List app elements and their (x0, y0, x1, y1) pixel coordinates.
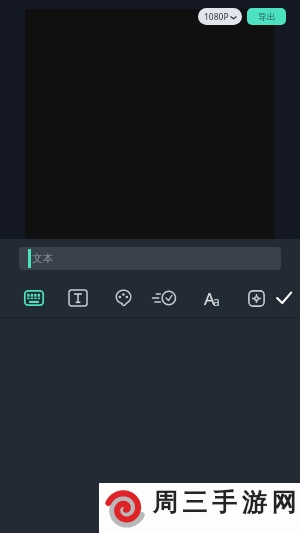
button[interactable]: Batch edit (240, 285, 272, 311)
button[interactable]: 导出 (247, 8, 286, 25)
button[interactable]: Colour (107, 285, 139, 311)
staticText: 1080P (204, 11, 229, 23)
button[interactable]: Animation (148, 285, 180, 311)
button[interactable]: Text style (62, 285, 94, 311)
staticText: 周三手游网 (150, 487, 299, 518)
button[interactable]: Confirm (268, 285, 300, 311)
button[interactable]: Font (196, 285, 228, 311)
button[interactable]: 文本 (19, 247, 281, 270)
staticText: a (213, 293, 220, 309)
button[interactable]: 1080P (198, 8, 242, 25)
staticText: A (204, 287, 215, 305)
staticText: 导出 (258, 11, 276, 22)
staticText: 文本 (32, 252, 53, 265)
button[interactable]: Keyboard (18, 285, 50, 311)
